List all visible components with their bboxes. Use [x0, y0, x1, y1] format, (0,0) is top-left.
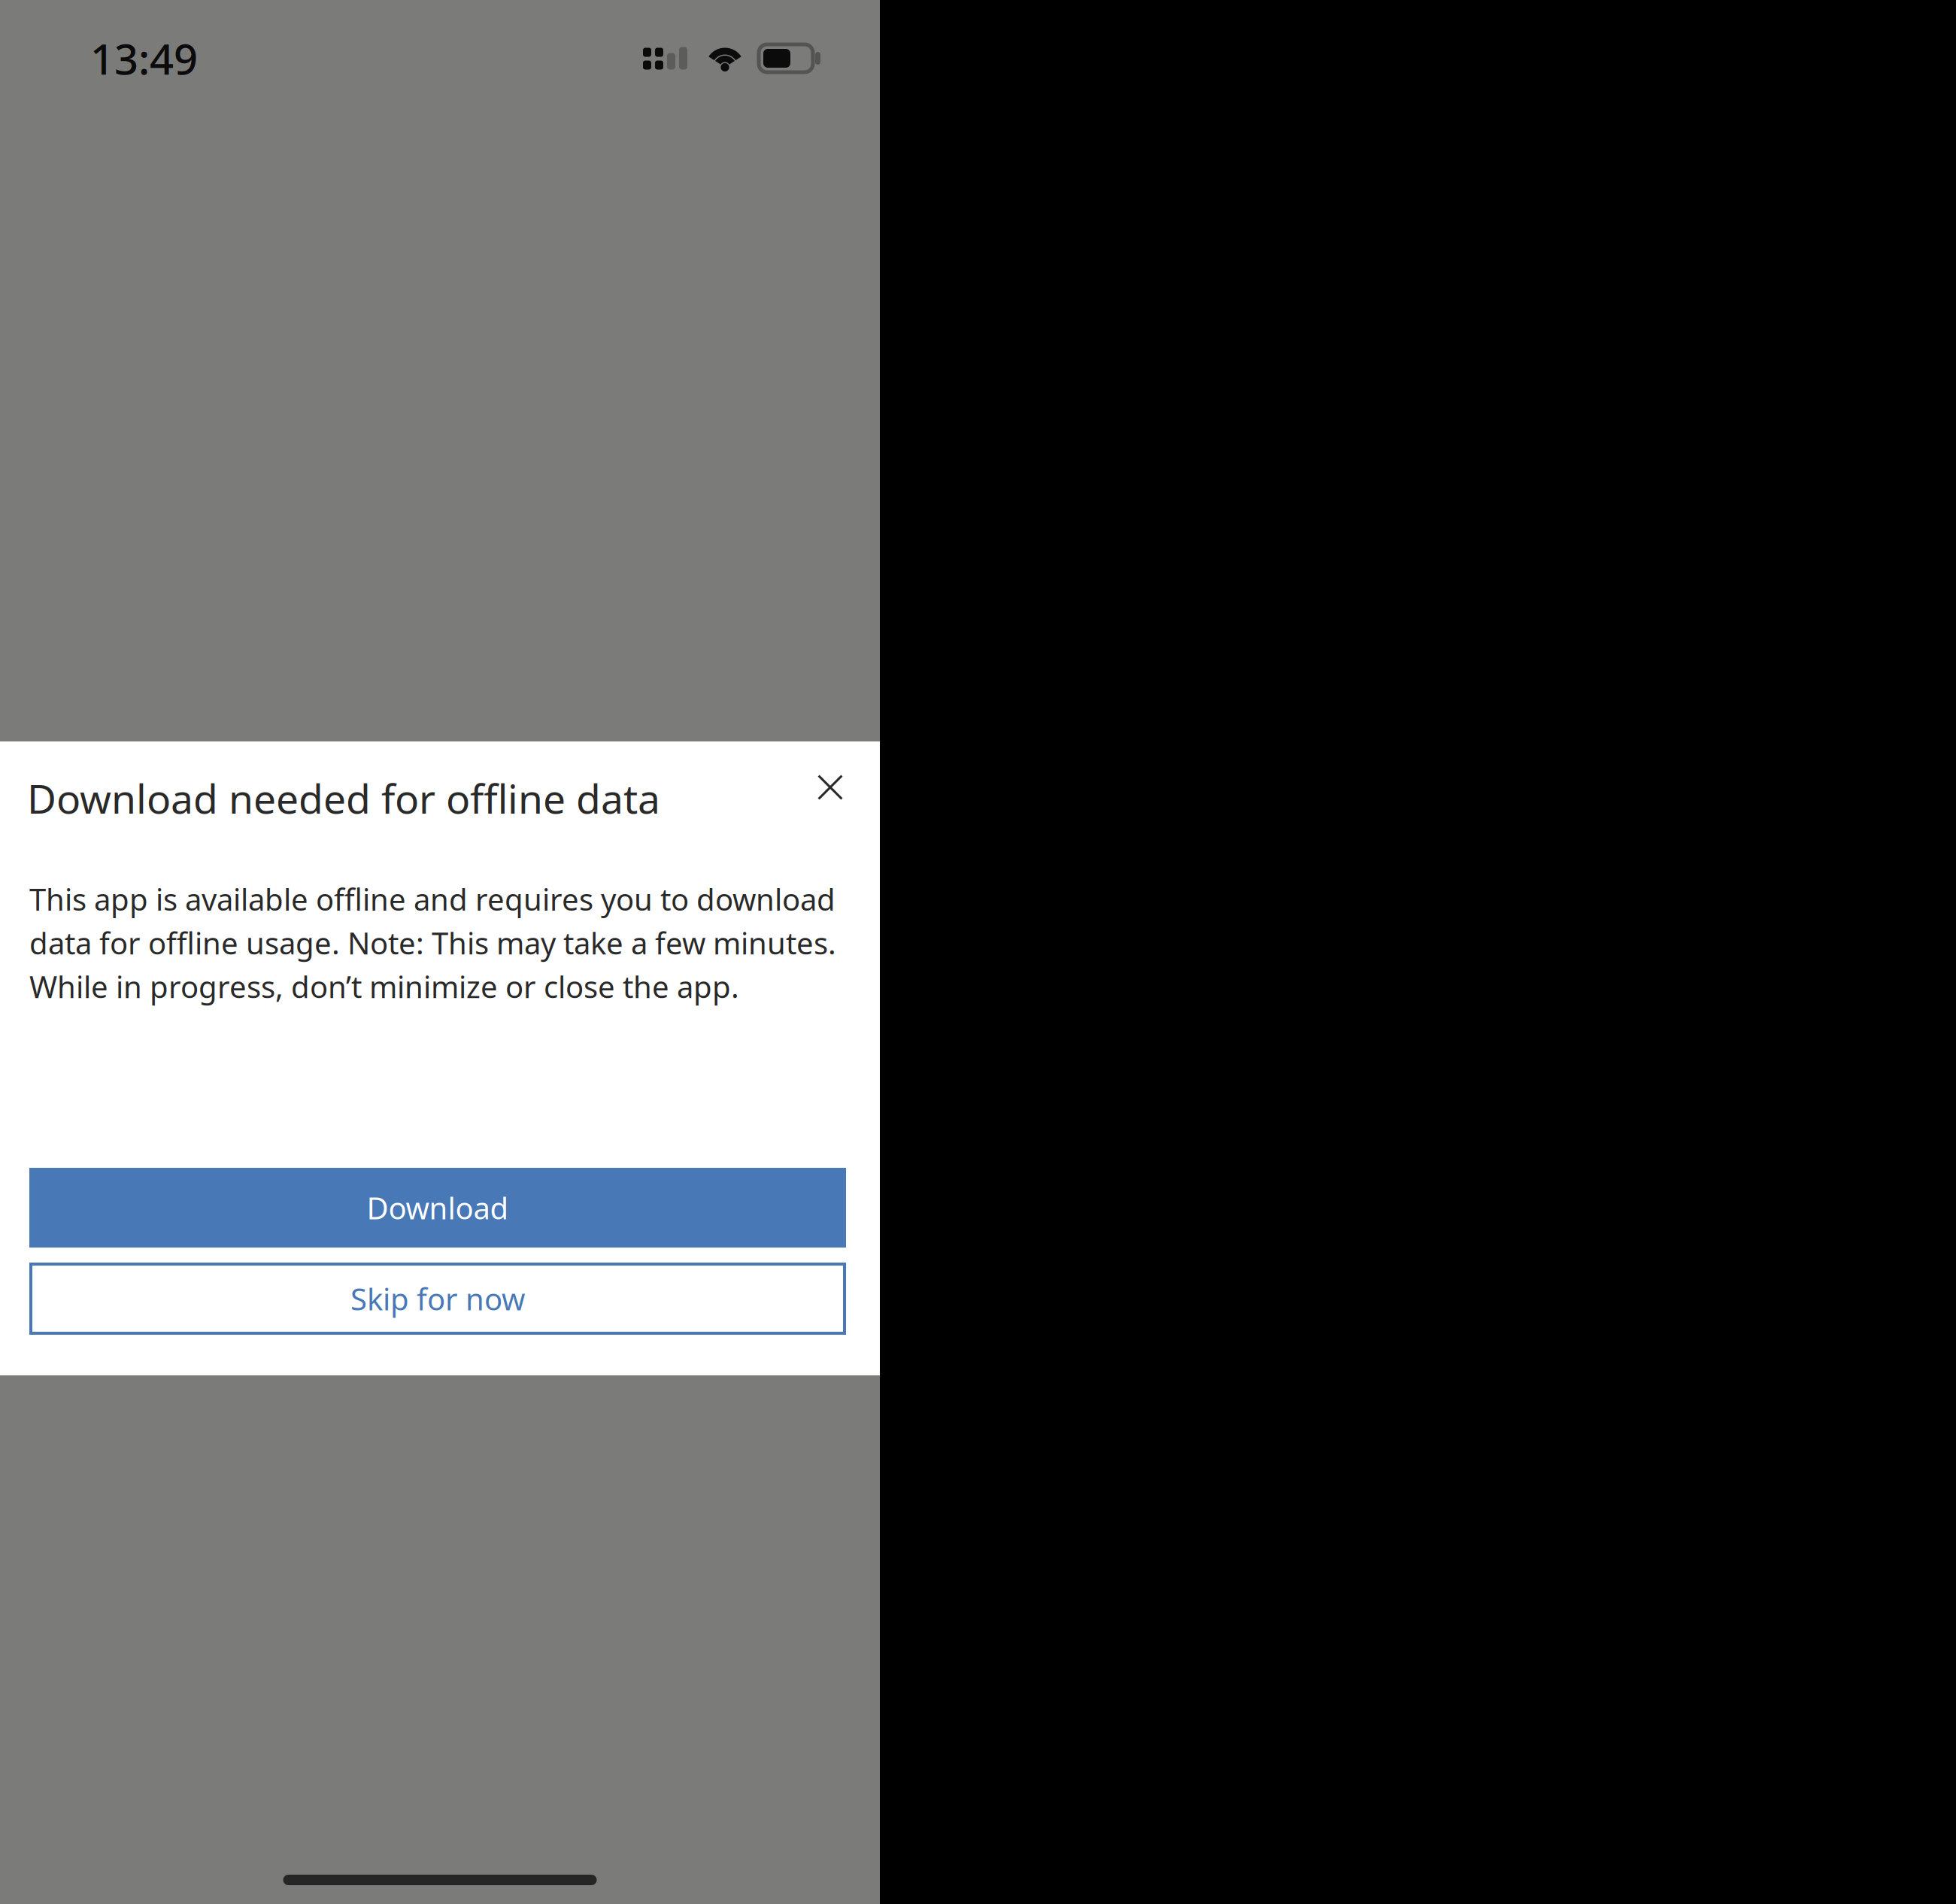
- staticText: While in progress, don’t minimize or clo…: [29, 966, 739, 1006]
- button[interactable]: Close: [798, 755, 863, 820]
- staticText: Download needed for offline data: [27, 772, 660, 825]
- staticText: This app is available offline and requir…: [29, 879, 835, 919]
- staticText: Skip for now: [350, 1279, 525, 1319]
- staticText: 13:49: [90, 30, 198, 86]
- staticText: data for offline usage. Note: This may t…: [29, 923, 836, 963]
- staticText: Download: [367, 1188, 509, 1228]
- button[interactable]: Download: [29, 1168, 846, 1248]
- button[interactable]: Skip for now: [29, 1263, 846, 1335]
